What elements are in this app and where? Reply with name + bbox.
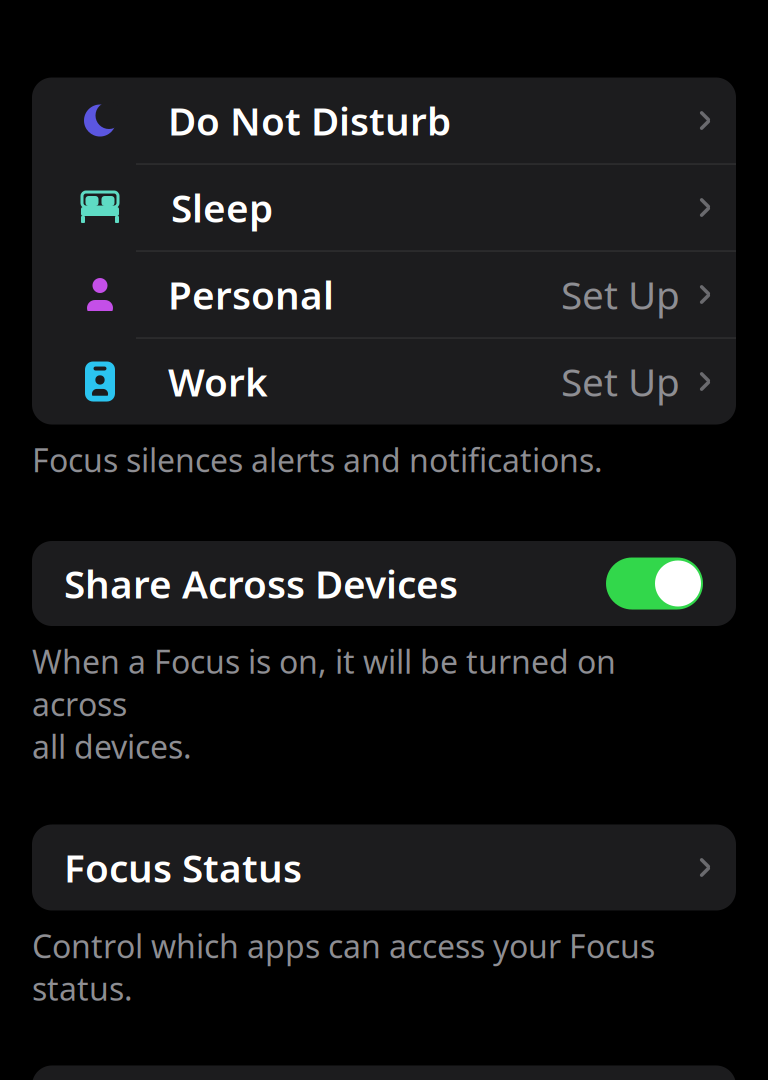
staticText: Focus silences alerts and notifications. (32, 438, 603, 481)
button[interactable]: Work (32, 338, 736, 424)
button[interactable]: Focus Status (32, 824, 736, 910)
staticText: Control which apps can access your Focus… (32, 924, 655, 1009)
staticText: Sleep (171, 182, 273, 233)
staticText: Do Not Disturb (168, 95, 451, 146)
staticText: Set Up (561, 356, 680, 407)
staticText: Focus Status (64, 842, 302, 893)
button[interactable]: Share Across Devices (32, 541, 736, 626)
button[interactable]: Do Not Disturb (32, 77, 736, 163)
staticText: Work (168, 356, 268, 407)
button[interactable]: Phone Calls (32, 1065, 736, 1080)
staticText: Share Across Devices (64, 558, 458, 609)
button[interactable]: Sleep (32, 164, 736, 250)
button[interactable]: Personal (32, 251, 736, 337)
staticText: Personal (168, 269, 334, 320)
staticText: Set Up (561, 269, 680, 320)
staticText: When a Focus is on, it will be turned on… (32, 640, 616, 767)
